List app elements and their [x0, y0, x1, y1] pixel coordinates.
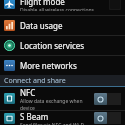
staticText: More networks	[20, 60, 77, 71]
button[interactable]: More networks	[0, 56, 125, 75]
staticText: Flight mode	[20, 0, 65, 7]
button[interactable]: Flight mode checkbox	[109, 0, 121, 10]
button[interactable]: Toggle	[94, 112, 121, 124]
staticText: Allow data exchange when device touches …	[20, 98, 91, 110]
staticText: Disable all wireless connections	[20, 7, 94, 11]
staticText: S Beam	[20, 111, 49, 122]
button[interactable]: S Beam	[0, 111, 125, 125]
staticText: Location services	[20, 40, 85, 51]
button[interactable]: Data usage	[0, 16, 125, 35]
button[interactable]: NFC	[0, 87, 125, 110]
staticText: Connect and share	[4, 76, 66, 86]
staticText: Send files via NFC and Wi-Fi	[20, 122, 85, 125]
staticText: Data usage	[20, 20, 63, 31]
button[interactable]: Flight mode	[0, 0, 125, 15]
staticText: NFC	[20, 87, 36, 98]
button[interactable]: Toggle	[94, 93, 121, 105]
button[interactable]: Location services	[0, 36, 125, 55]
